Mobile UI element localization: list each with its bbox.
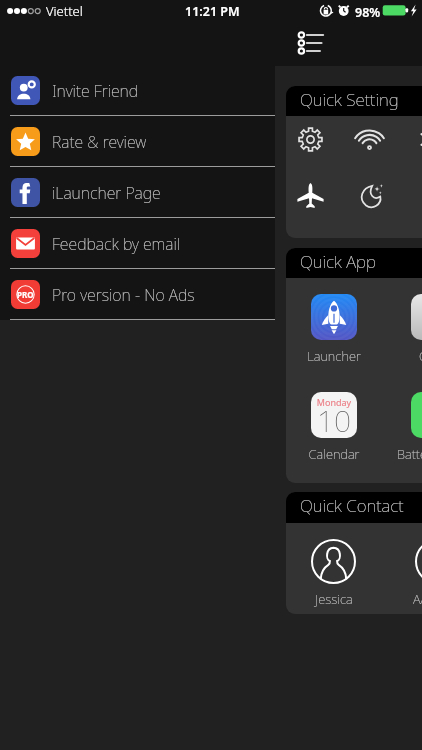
staticText: Monday: [311, 396, 357, 408]
staticText: 11:21 PM: [185, 3, 240, 20]
staticText: Rate & review: [52, 131, 147, 153]
button[interactable]: Quick setting toggle: [340, 168, 399, 223]
staticText: Pro version - No Ads: [52, 284, 195, 306]
button[interactable]: Jessica: [286, 539, 385, 614]
button[interactable]: Launcher: [286, 294, 384, 376]
staticText: Quick App: [300, 250, 376, 273]
button[interactable]: Monday: [286, 392, 384, 474]
button[interactable]: Battery saver: [384, 392, 422, 474]
button[interactable]: Quick setting toggle: [286, 168, 340, 223]
button[interactable]: Clock: [384, 294, 422, 376]
button[interactable]: Invite Friend: [0, 65, 275, 116]
button[interactable]: Feedback by email: [0, 218, 275, 269]
staticText: Invite Friend: [52, 80, 139, 102]
button[interactable]: Quick setting toggle: [399, 112, 422, 167]
staticText: PRO: [17, 289, 34, 300]
staticText: Launcher: [286, 347, 384, 365]
button[interactable]: AA Hung: [385, 539, 422, 614]
staticText: Quick Setting: [300, 88, 399, 111]
button[interactable]: Quick setting toggle: [340, 112, 399, 167]
button[interactable]: iLauncher Page: [0, 167, 275, 218]
staticText: 10: [311, 400, 357, 438]
staticText: Quick Contact: [300, 494, 404, 517]
staticText: iLauncher Page: [52, 182, 161, 204]
staticText: Battery saver: [384, 445, 422, 463]
staticText: AA Hung: [386, 590, 422, 608]
staticText: Jessica: [286, 590, 386, 608]
staticText: Calendar: [286, 445, 384, 463]
staticText: Clock: [384, 347, 422, 365]
staticText: Feedback by email: [52, 233, 181, 255]
button[interactable]: Menu: [294, 29, 328, 63]
button[interactable]: Quick setting toggle: [286, 112, 340, 167]
button[interactable]: Rate & review: [0, 116, 275, 167]
button[interactable]: PRO: [0, 269, 275, 320]
staticText: Viettel: [46, 2, 83, 20]
staticText: 98%: [355, 4, 381, 21]
